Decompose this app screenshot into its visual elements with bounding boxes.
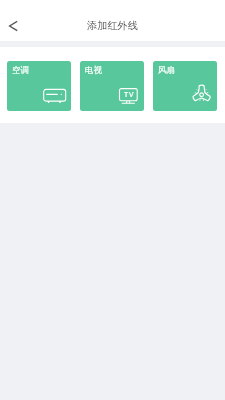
- staticText: 风扇: [158, 65, 175, 76]
- button[interactable]: Back: [0, 13, 26, 39]
- button[interactable]: Television: [80, 61, 144, 111]
- staticText: 空调: [12, 65, 29, 76]
- staticText: 添加红外线: [87, 19, 138, 32]
- button[interactable]: Air conditioner: [7, 61, 71, 111]
- button[interactable]: Fan: [153, 61, 217, 111]
- staticText: 电视: [85, 65, 102, 76]
- staticText: TV: [124, 89, 135, 99]
